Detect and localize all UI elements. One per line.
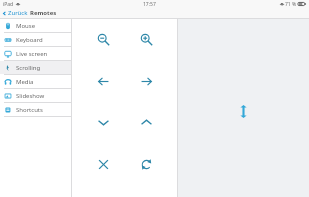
staticText: Mouse (16, 22, 36, 30)
button[interactable]: ZoomIn (135, 28, 157, 50)
staticText: Scrolling (16, 64, 41, 72)
button[interactable]: Refresh (135, 153, 157, 175)
button[interactable]: ChevronUp (135, 111, 157, 133)
staticText: Slideshow (16, 92, 45, 100)
staticText: iPad (3, 1, 14, 8)
staticText: Media (16, 78, 34, 86)
staticText: Live screen (16, 50, 48, 58)
staticText: Shortcuts (16, 106, 43, 114)
button[interactable]: ZoomOut (92, 28, 114, 50)
button[interactable]: Back (2, 8, 72, 18)
button[interactable]: Keyboard (0, 33, 71, 46)
button[interactable]: Mouse (0, 19, 71, 32)
button[interactable]: Close (92, 153, 114, 175)
staticText: Keyboard (16, 36, 43, 44)
button[interactable]: Shortcuts (0, 103, 71, 116)
button[interactable]: Slideshow (0, 89, 71, 102)
staticText: 17:57 (143, 1, 156, 8)
staticText: Zurück (8, 9, 28, 17)
button[interactable]: Media (0, 75, 71, 88)
button[interactable]: Scrolling (0, 61, 71, 74)
staticText: 71 % (285, 1, 297, 8)
button[interactable]: ArrowLeft (92, 70, 114, 92)
staticText: Remotes (30, 9, 57, 17)
button[interactable]: ArrowRight (135, 70, 157, 92)
other: Back (2, 11, 7, 16)
button[interactable]: ChevronDown (92, 111, 114, 133)
button[interactable]: Live screen (0, 47, 71, 60)
